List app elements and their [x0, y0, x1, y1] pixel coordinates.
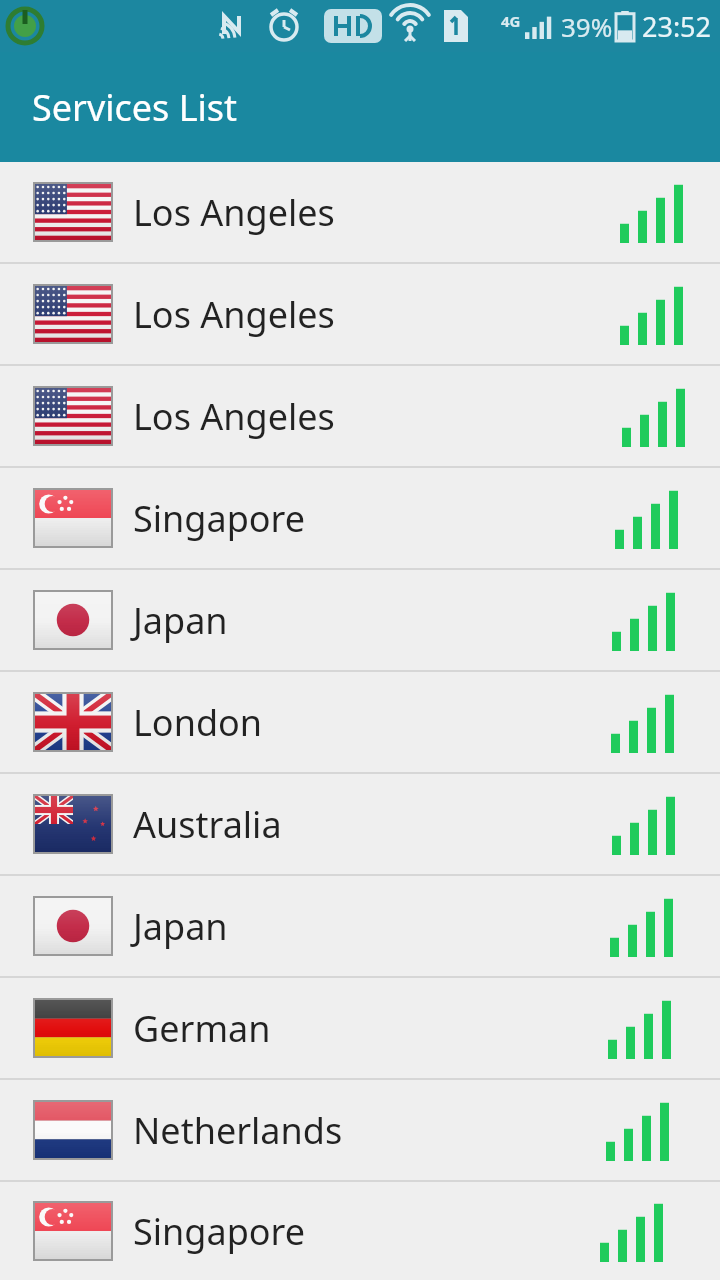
staticText: Singapore [133, 494, 620, 543]
other: Signal strength [622, 385, 686, 447]
staticText: Netherlands [133, 1106, 620, 1155]
staticText: Los Angeles [133, 188, 620, 237]
staticText: German [133, 1004, 620, 1053]
staticText: London [133, 698, 620, 747]
button[interactable]: Singapore [0, 1182, 720, 1280]
other: Signal strength [606, 1099, 670, 1161]
other: Signal strength [615, 487, 679, 549]
staticText: Australia [133, 800, 620, 849]
staticText: 39% [561, 9, 613, 44]
staticText: 23:52 [642, 8, 712, 45]
button[interactable]: London [0, 672, 720, 772]
other: Signal strength [611, 691, 675, 753]
other: Signal strength [608, 997, 672, 1059]
staticText: 4G [501, 11, 521, 31]
button[interactable]: Los Angeles [0, 366, 720, 466]
other: Signal strength [620, 283, 684, 345]
button[interactable]: Japan [0, 876, 720, 976]
other: Signal strength [620, 181, 684, 243]
button[interactable]: Los Angeles [0, 162, 720, 262]
staticText: Japan [133, 596, 620, 645]
other: Signal strength [612, 793, 676, 855]
staticText: Japan [133, 902, 620, 951]
button[interactable]: Singapore [0, 468, 720, 568]
staticText: Singapore [133, 1207, 620, 1256]
other: Signal strength [600, 1200, 664, 1262]
staticText: Services List [32, 83, 238, 132]
button[interactable]: Australia [0, 774, 720, 874]
other: Signal strength [612, 589, 676, 651]
button[interactable]: German [0, 978, 720, 1078]
button[interactable]: Netherlands [0, 1080, 720, 1180]
other: Signal strength [610, 895, 674, 957]
button[interactable]: Japan [0, 570, 720, 670]
staticText: Los Angeles [133, 392, 620, 441]
button[interactable]: Los Angeles [0, 264, 720, 364]
staticText: Los Angeles [133, 290, 620, 339]
